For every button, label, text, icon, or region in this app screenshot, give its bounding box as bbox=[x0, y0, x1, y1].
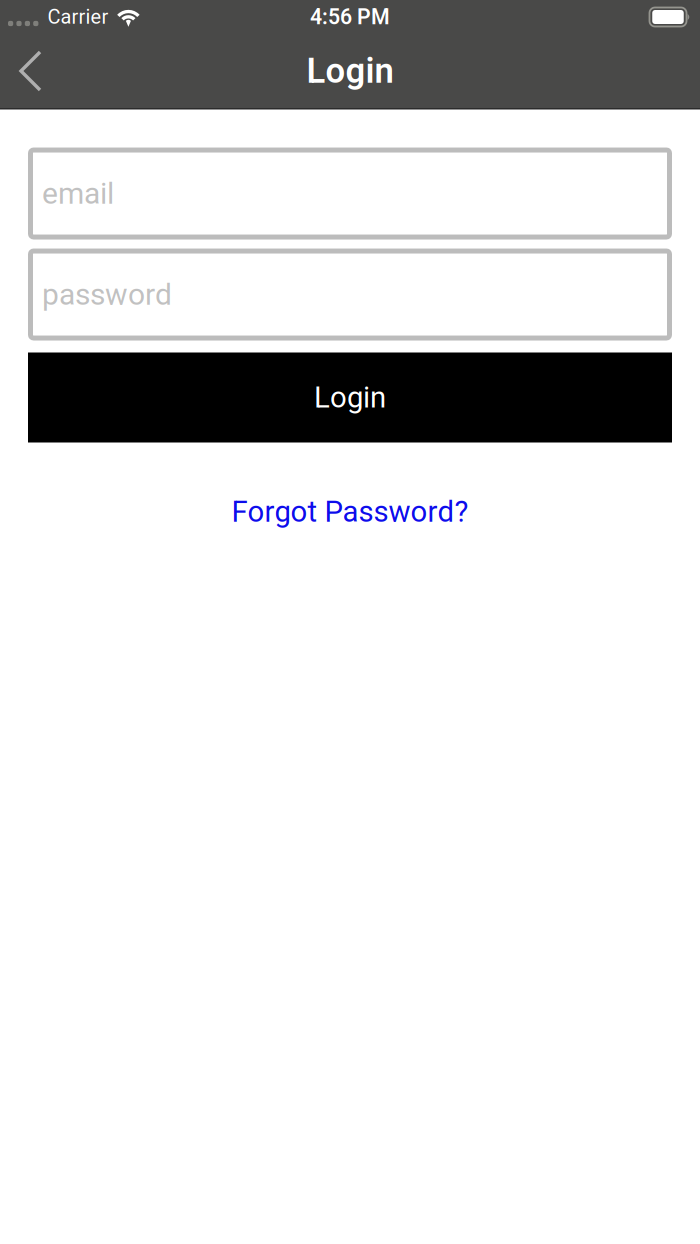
staticText: Login bbox=[306, 51, 393, 91]
button[interactable]: password text field bbox=[28, 248, 672, 340]
button[interactable]: Back bbox=[0, 34, 56, 108]
staticText: password bbox=[42, 277, 172, 312]
staticText: Forgot Password? bbox=[231, 494, 468, 529]
staticText: Login bbox=[314, 380, 386, 415]
button[interactable]: Forgot Password? bbox=[231, 486, 468, 537]
staticText: email bbox=[42, 176, 114, 211]
button[interactable]: email text field bbox=[28, 147, 672, 239]
button[interactable]: Login bbox=[28, 352, 672, 442]
staticText: Carrier bbox=[47, 5, 108, 29]
staticText: 4:56 PM bbox=[310, 4, 390, 29]
